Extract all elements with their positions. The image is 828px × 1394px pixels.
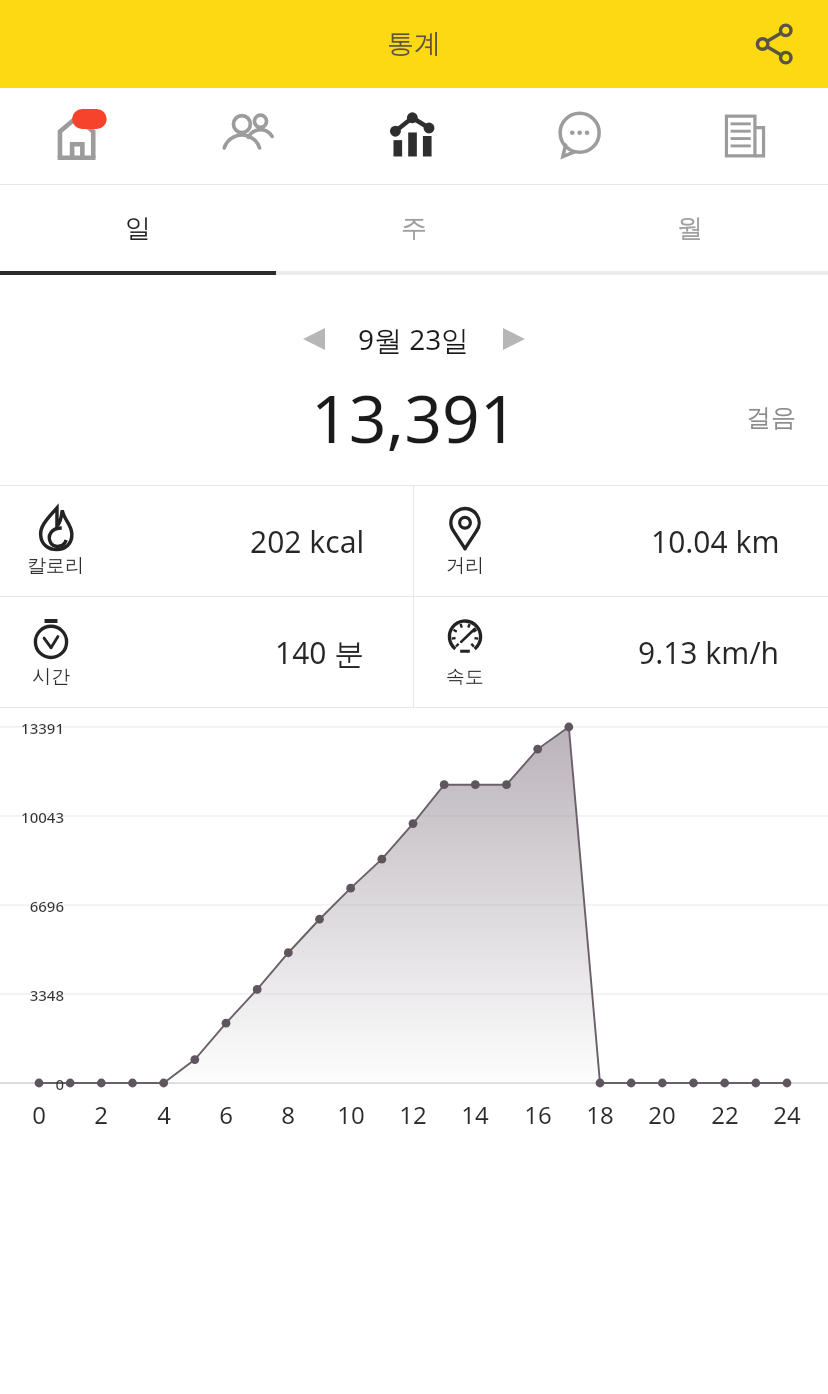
staticText: 202 kcal	[250, 521, 365, 562]
button[interactable]: Friends	[165, 88, 330, 184]
staticText: 4	[134, 1098, 194, 1131]
button[interactable]: Chats	[496, 88, 662, 184]
button[interactable]: 칼로리	[0, 486, 413, 596]
staticText: 3348	[6, 985, 64, 1005]
staticText: 22	[695, 1098, 755, 1131]
staticText: 0	[6, 1074, 64, 1094]
button[interactable]: 속도	[414, 597, 828, 707]
staticText: 칼로리	[27, 554, 84, 578]
staticText: 9월 23일	[358, 320, 470, 358]
staticText: 16	[508, 1098, 568, 1131]
button[interactable]: 거리	[414, 486, 828, 596]
button[interactable]: Share	[746, 16, 802, 72]
button[interactable]: 주	[276, 185, 552, 271]
staticText: 18	[570, 1098, 630, 1131]
staticText: 24	[757, 1098, 817, 1131]
staticText: 10043	[6, 807, 64, 827]
staticText: 6	[196, 1098, 256, 1131]
button[interactable]: Next day	[486, 311, 542, 367]
staticText: 13,391	[311, 372, 518, 462]
staticText: 20	[632, 1098, 692, 1131]
staticText: 6696	[6, 896, 64, 916]
staticText: 주	[401, 212, 427, 245]
button[interactable]: Previous day	[286, 311, 342, 367]
button[interactable]: 월	[552, 185, 828, 271]
staticText: 140 분	[275, 632, 365, 673]
staticText: 속도	[446, 665, 484, 689]
button[interactable]: Friends home	[0, 88, 165, 184]
button[interactable]: 일	[0, 185, 276, 271]
staticText: 거리	[446, 554, 484, 578]
staticText: 일	[125, 212, 151, 245]
staticText: 13391	[6, 718, 64, 738]
staticText: 월	[677, 212, 703, 245]
staticText: 9.13 km/h	[638, 632, 780, 673]
staticText: 시간	[32, 665, 70, 689]
staticText: 8	[258, 1098, 318, 1131]
staticText: 10	[321, 1098, 381, 1131]
button[interactable]: 시간	[0, 597, 413, 707]
staticText: 0	[9, 1098, 69, 1131]
button[interactable]: Statistics	[330, 88, 496, 184]
staticText: 2	[71, 1098, 131, 1131]
staticText: 걸음	[746, 402, 796, 433]
staticText: 10.04 km	[651, 521, 780, 562]
staticText: 12	[383, 1098, 443, 1131]
button[interactable]: More	[662, 88, 828, 184]
staticText: 14	[445, 1098, 505, 1131]
staticText: 통계	[387, 27, 441, 61]
